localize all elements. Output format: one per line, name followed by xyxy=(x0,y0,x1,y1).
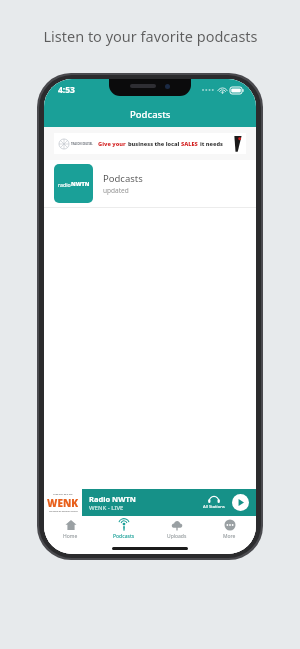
button[interactable]: radio xyxy=(44,160,256,207)
staticText: All Stations xyxy=(203,504,225,510)
staticText: Home xyxy=(63,533,78,540)
staticText: NWTN xyxy=(71,180,90,188)
button[interactable]: Uploads xyxy=(150,516,203,542)
staticText: Radio NWTN xyxy=(89,494,136,504)
staticText: SALES xyxy=(181,140,200,148)
staticText: More xyxy=(223,533,236,540)
button[interactable]: More xyxy=(203,516,256,542)
staticText: TRACON DIGITAL xyxy=(71,142,93,146)
staticText: Podcasts xyxy=(103,172,143,185)
staticText: Uploads xyxy=(167,533,187,540)
staticText: radio xyxy=(58,181,71,188)
staticText: WENK xyxy=(47,496,79,510)
staticText: it needs xyxy=(200,140,223,148)
button[interactable]: Radio NWTN xyxy=(82,489,256,516)
staticText: Give your xyxy=(98,140,128,148)
staticText: Podcasts xyxy=(113,533,135,540)
staticText: Podcasts xyxy=(130,108,171,121)
button[interactable]: WENK station xyxy=(44,489,82,516)
staticText: Listen to your favorite podcasts xyxy=(43,26,258,46)
staticText: 1250 AM 99.3 FM xyxy=(53,493,73,496)
staticText: THE VOICE OF WEAKLEY COUNTY xyxy=(49,510,78,512)
staticText: 4:53 xyxy=(58,84,75,96)
button[interactable]: Home xyxy=(44,516,97,542)
staticText: updated xyxy=(103,186,129,195)
button[interactable]: Advertisement xyxy=(44,127,256,160)
button[interactable]: All Stations xyxy=(201,495,227,510)
button[interactable]: Podcasts xyxy=(97,516,150,542)
button[interactable]: Play xyxy=(232,494,249,511)
staticText: business the local xyxy=(128,140,181,148)
staticText: WENK - LIVE xyxy=(89,504,124,512)
